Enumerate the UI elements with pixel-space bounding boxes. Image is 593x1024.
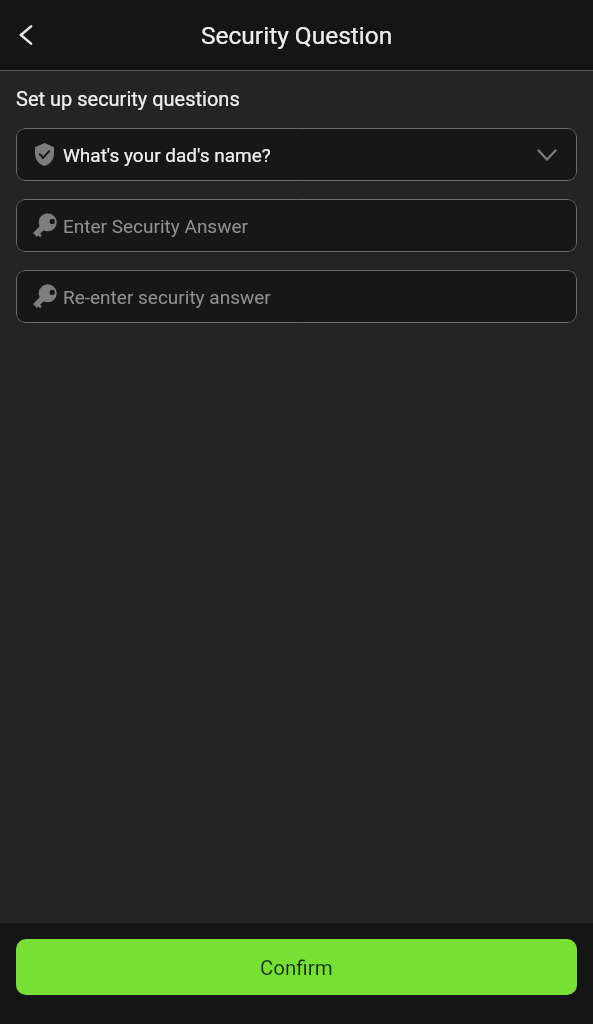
button[interactable]: Back: [9, 18, 43, 52]
staticText: Enter Security Answer: [63, 215, 248, 237]
staticText: Confirm: [260, 956, 333, 980]
staticText: Re-enter security answer: [63, 286, 271, 308]
button[interactable]: What's your dad's name?: [16, 128, 577, 181]
staticText: Security Question: [201, 21, 393, 50]
button[interactable]: Confirm: [16, 939, 577, 995]
button[interactable]: Expand question list: [535, 143, 559, 167]
staticText: What's your dad's name?: [63, 144, 271, 166]
staticText: Set up security questions: [16, 87, 240, 110]
button[interactable]: Re-enter security answer: [16, 270, 577, 323]
button[interactable]: Enter Security Answer: [16, 199, 577, 252]
